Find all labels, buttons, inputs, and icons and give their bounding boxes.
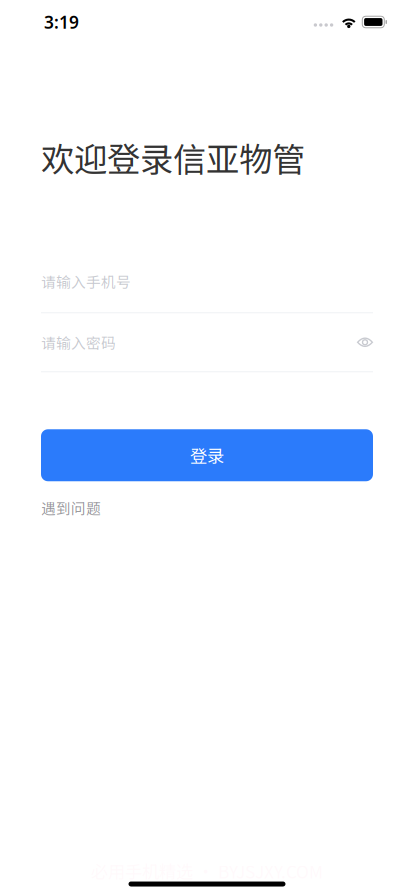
staticText: 欢迎登录信亚物管 <box>41 133 305 181</box>
staticText: 3:19 <box>44 10 79 33</box>
button[interactable]: 请输入密码 <box>41 313 335 371</box>
staticText: 请输入密码 <box>41 332 116 353</box>
staticText: 登录 <box>190 443 224 468</box>
staticText: 必用手机精选 · BYJSJXY.COM <box>91 858 323 884</box>
button[interactable]: 遇到问题 <box>41 489 101 526</box>
staticText: 请输入手机号 <box>41 271 131 292</box>
button[interactable]: 请输入手机号 <box>41 250 373 312</box>
button[interactable]: 登录 <box>41 429 373 481</box>
button[interactable]: Show password <box>335 323 373 361</box>
staticText: 遇到问题 <box>41 497 101 518</box>
